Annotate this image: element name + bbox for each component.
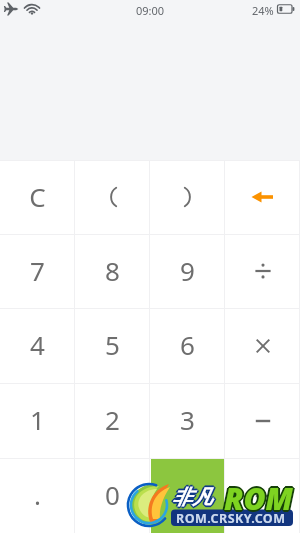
staticText: 24% <box>252 3 274 18</box>
staticText: 非凡 <box>172 487 212 512</box>
staticText: 非凡 <box>172 485 212 510</box>
staticText: ROM <box>225 478 294 519</box>
button[interactable]: Multiply <box>225 308 300 383</box>
staticText: ROM <box>224 478 293 519</box>
button[interactable]: 6 <box>150 308 225 383</box>
button[interactable]: 0 <box>75 458 150 533</box>
staticText: C <box>29 179 46 214</box>
staticText: 非凡 <box>172 483 212 508</box>
button[interactable]: 9 <box>150 234 225 308</box>
staticText: 7 <box>30 253 45 288</box>
button[interactable]: 8 <box>75 234 150 308</box>
button[interactable]: Subtract <box>225 383 300 458</box>
button[interactable]: 3 <box>150 383 225 458</box>
staticText: = <box>180 477 195 512</box>
staticText: ROM <box>224 476 293 517</box>
staticText: 非凡 <box>173 484 213 509</box>
button[interactable] <box>75 160 150 234</box>
button[interactable]: . <box>0 458 75 533</box>
staticText: 09:00 <box>136 3 165 18</box>
staticText: ROM <box>224 480 293 521</box>
button[interactable]: Divide <box>225 234 300 308</box>
staticText: 非凡 <box>173 486 213 511</box>
staticText: 5 <box>105 327 120 362</box>
staticText: ROM <box>224 477 293 518</box>
staticText: ROM <box>225 477 294 518</box>
staticText: 3 <box>180 402 195 437</box>
staticText: 非凡 <box>171 484 211 509</box>
button[interactable]: 7 <box>0 234 75 308</box>
staticText: 非凡 <box>172 486 212 511</box>
button[interactable]: 4 <box>0 308 75 383</box>
staticText: ROM <box>223 478 292 519</box>
button[interactable]: 1 <box>0 383 75 458</box>
staticText: ROM <box>224 479 293 520</box>
staticText: 9 <box>180 253 195 288</box>
staticText: 2 <box>105 402 120 437</box>
staticText: ROM <box>223 477 292 518</box>
staticText: 非凡 <box>172 484 212 509</box>
staticText: 0 <box>105 477 120 512</box>
button[interactable] <box>150 160 225 234</box>
staticText: 非凡 <box>171 486 211 511</box>
staticText: 8 <box>105 253 120 288</box>
button[interactable]: = <box>150 458 225 533</box>
staticText: . <box>34 477 41 512</box>
staticText: ROM <box>225 479 294 520</box>
staticText: 非凡 <box>173 485 213 510</box>
staticText: 非凡 <box>174 485 214 510</box>
button[interactable]: 2 <box>75 383 150 458</box>
staticText: ROM <box>223 479 292 520</box>
staticText: ROM.CRSKY.COM <box>176 510 286 527</box>
staticText: 非凡 <box>170 485 210 510</box>
staticText: 1 <box>30 402 45 437</box>
staticText: ROM <box>222 478 291 519</box>
button[interactable]: 5 <box>75 308 150 383</box>
staticText: ROM <box>226 478 295 519</box>
button[interactable]: Backspace <box>225 160 300 234</box>
staticText: 6 <box>180 327 195 362</box>
staticText: 4 <box>30 327 45 362</box>
button[interactable]: Add <box>225 458 300 533</box>
button[interactable]: C <box>0 160 75 234</box>
staticText: 非凡 <box>171 485 211 510</box>
